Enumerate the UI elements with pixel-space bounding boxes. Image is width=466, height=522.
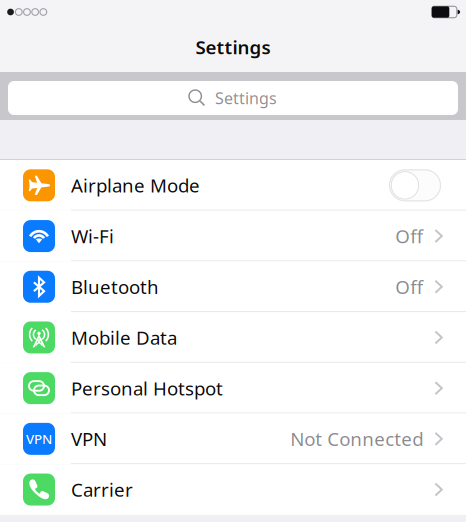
- button[interactable]: VPN: [0, 413, 466, 464]
- staticText: Carrier: [71, 477, 133, 502]
- button[interactable]: Bluetooth: [0, 261, 466, 312]
- staticText: Not Connected: [290, 426, 423, 451]
- staticText: VPN: [26, 430, 52, 448]
- staticText: Personal Hotspot: [71, 376, 223, 401]
- staticText: Off: [395, 274, 423, 299]
- staticText: VPN: [71, 426, 107, 451]
- button[interactable]: Carrier: [0, 464, 466, 515]
- staticText: Mobile Data: [71, 325, 177, 350]
- button[interactable]: Settings: [8, 81, 458, 115]
- staticText: Settings: [195, 35, 270, 59]
- staticText: Airplane Mode: [71, 173, 200, 198]
- staticText: Wi-Fi: [71, 224, 114, 248]
- button[interactable]: Mobile Data: [0, 312, 466, 363]
- staticText: Settings: [215, 87, 277, 109]
- button[interactable]: Personal Hotspot: [0, 363, 466, 413]
- staticText: Bluetooth: [71, 274, 159, 299]
- button[interactable]: Airplane Mode: [0, 160, 466, 211]
- button[interactable]: Wi-Fi: [0, 211, 466, 261]
- staticText: Off: [395, 224, 423, 248]
